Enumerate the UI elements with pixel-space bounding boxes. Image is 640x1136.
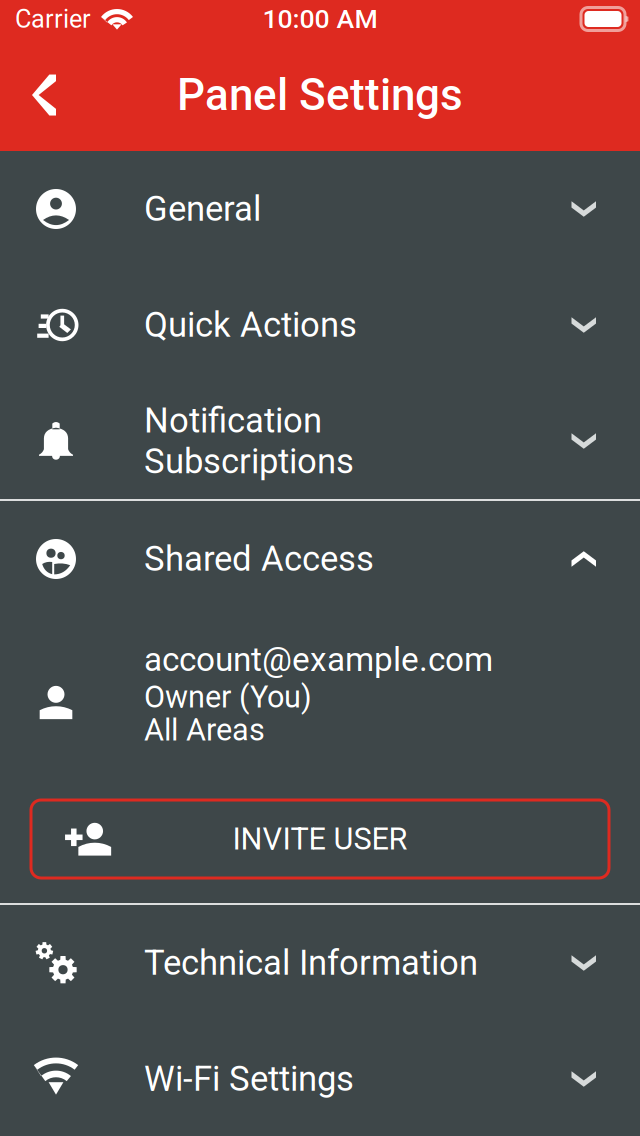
button[interactable]: Back [0,54,78,135]
staticText: Shared Access [144,539,374,579]
button[interactable]: Notification Subscriptions [0,383,640,499]
staticText: General [144,189,261,229]
staticText: Technical Information [144,943,478,983]
staticText: account@example.com [144,640,493,679]
staticText: Quick Actions [144,305,357,345]
staticText: INVITE USER [232,821,407,857]
staticText: Owner (You) [144,679,312,715]
staticText: Notification Subscriptions [144,400,354,482]
staticText: 10:00 AM [262,3,377,35]
button[interactable]: Wi-Fi Settings [0,1021,640,1136]
staticText: All Areas [144,712,265,748]
button[interactable]: Quick Actions [0,267,640,383]
button[interactable]: Shared Access [0,501,640,617]
staticText: Wi-Fi Settings [144,1059,354,1099]
button[interactable]: Technical Information [0,905,640,1021]
button[interactable]: INVITE USER [31,800,609,878]
staticText: Panel Settings [177,69,463,121]
button[interactable]: General [0,151,640,267]
staticText: Carrier [15,4,91,34]
